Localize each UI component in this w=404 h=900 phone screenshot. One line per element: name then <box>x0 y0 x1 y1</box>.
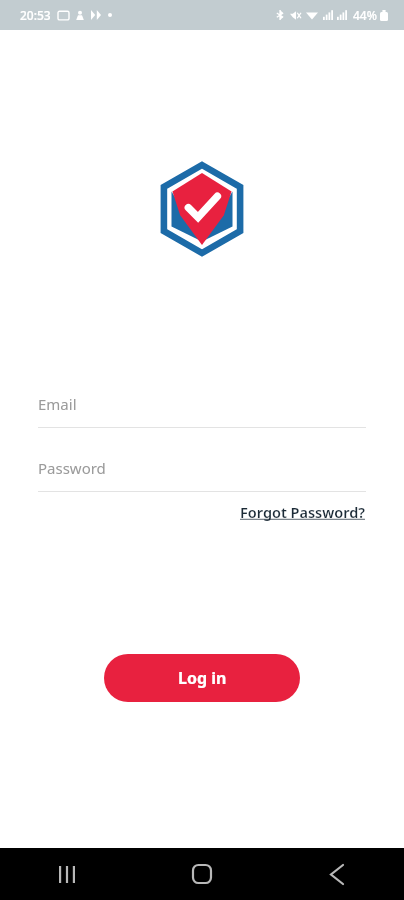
button[interactable]: Recents <box>0 848 134 900</box>
staticText: Email <box>38 394 77 414</box>
staticText: Log in <box>178 667 227 689</box>
staticText: 44% <box>353 7 377 23</box>
button[interactable]: Home <box>134 848 269 900</box>
staticText: 20:53 <box>20 7 51 23</box>
button[interactable]: Forgot Password? <box>238 498 368 526</box>
button[interactable]: Email <box>38 394 366 428</box>
button[interactable]: Back <box>269 848 404 900</box>
staticText: Password <box>38 458 106 478</box>
staticText: Forgot Password? <box>240 502 366 522</box>
button[interactable]: Log in <box>104 654 300 702</box>
button[interactable]: Password <box>38 458 366 492</box>
